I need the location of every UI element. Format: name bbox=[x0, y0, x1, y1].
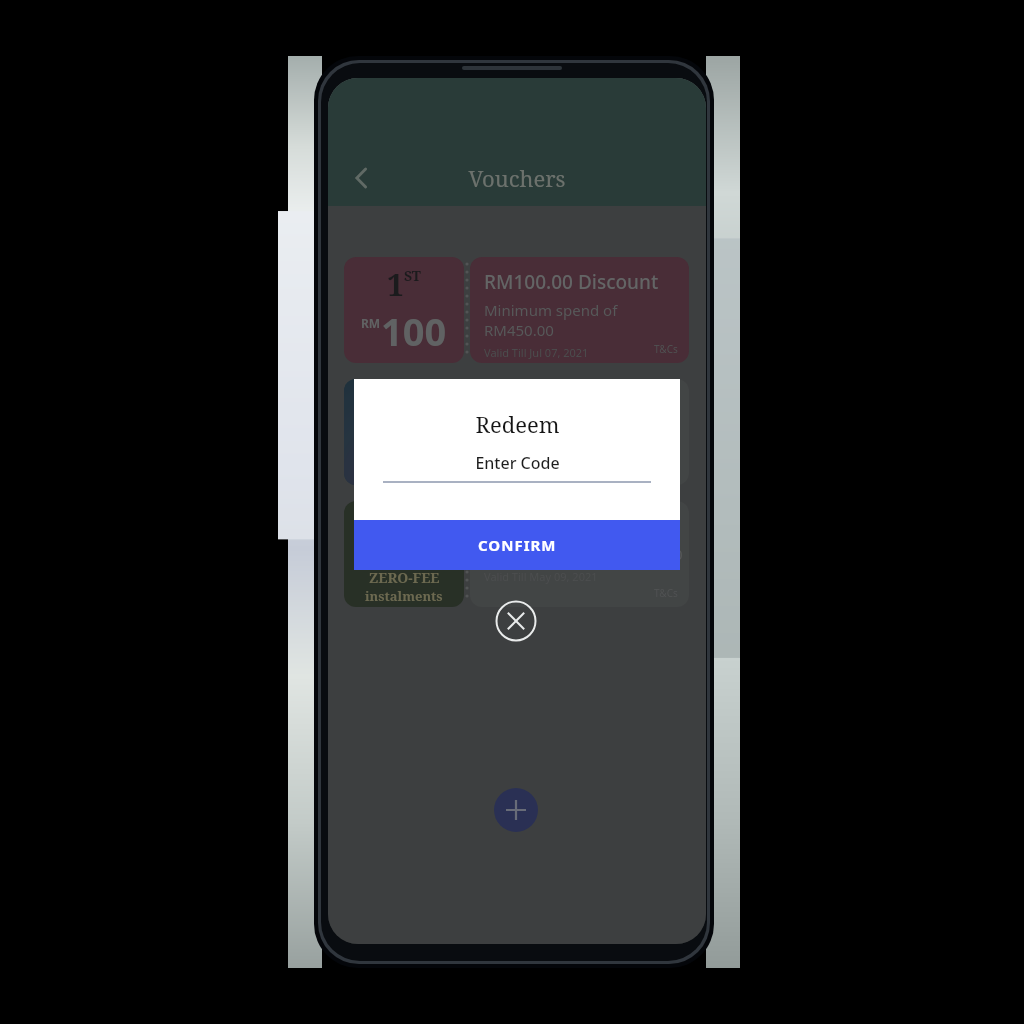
staticText: Redeem bbox=[475, 409, 560, 439]
button[interactable]: Extra bbox=[344, 501, 689, 607]
staticText: Minimum spend of RM450.00 bbox=[484, 300, 689, 340]
staticText: 100 bbox=[381, 305, 447, 357]
button[interactable]: 1 bbox=[344, 257, 689, 363]
staticText: Valid Till May 31, 2021 bbox=[484, 467, 598, 482]
button[interactable]: CONFIRM bbox=[354, 520, 680, 570]
button[interactable]: RM25 bbox=[344, 379, 689, 485]
button[interactable]: Add voucher bbox=[494, 788, 538, 832]
button[interactable]: Back bbox=[338, 154, 386, 202]
staticText: Valid Till Jul 07, 2021 bbox=[484, 345, 589, 360]
staticText: Vouchers bbox=[468, 163, 566, 193]
staticText: RM25.00 Discount bbox=[484, 391, 648, 417]
staticText: T&Cs bbox=[654, 586, 678, 600]
staticText: T&Cs bbox=[654, 342, 678, 356]
staticText: ST bbox=[404, 266, 421, 285]
staticText: CONFIRM bbox=[478, 535, 557, 555]
staticText: Valid Till May 09, 2021 bbox=[484, 569, 598, 584]
staticText: Enter Code bbox=[475, 452, 560, 474]
staticText: ZERO-FEE bbox=[369, 568, 440, 587]
button[interactable]: Close bbox=[494, 599, 538, 643]
staticText: RM100.00 Discount bbox=[484, 269, 659, 295]
staticText: RM bbox=[361, 315, 381, 331]
staticText: Extra bbox=[384, 503, 424, 522]
staticText: Minimum spend of RM250.00 bbox=[484, 422, 689, 462]
staticText: Minimum spend of RM2,000 bbox=[484, 544, 683, 564]
staticText: 8 Free Instalment bbox=[484, 513, 644, 539]
staticText: instalments bbox=[365, 587, 443, 605]
staticText: 1 bbox=[387, 264, 404, 305]
